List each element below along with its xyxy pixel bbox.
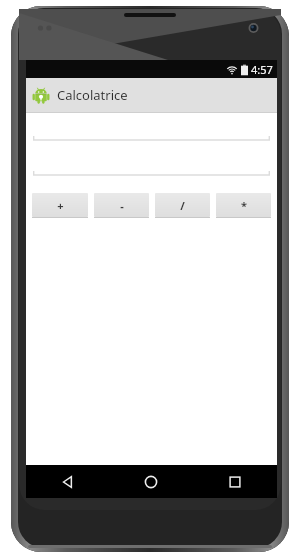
staticText: / (180, 198, 185, 213)
staticText: - (120, 198, 124, 213)
staticText: 4:57 (251, 62, 273, 77)
button[interactable]: / (155, 193, 210, 217)
button[interactable]: Recent apps (193, 465, 277, 498)
button[interactable] (33, 160, 270, 176)
button[interactable]: Home (109, 465, 193, 498)
staticText: Calcolatrice (57, 86, 128, 104)
button[interactable]: - (94, 193, 149, 217)
button[interactable]: + (32, 193, 88, 217)
staticText: * (241, 198, 247, 213)
button[interactable]: Back (26, 465, 109, 498)
button[interactable]: * (216, 193, 271, 217)
staticText: + (57, 198, 64, 213)
button[interactable] (33, 125, 270, 141)
